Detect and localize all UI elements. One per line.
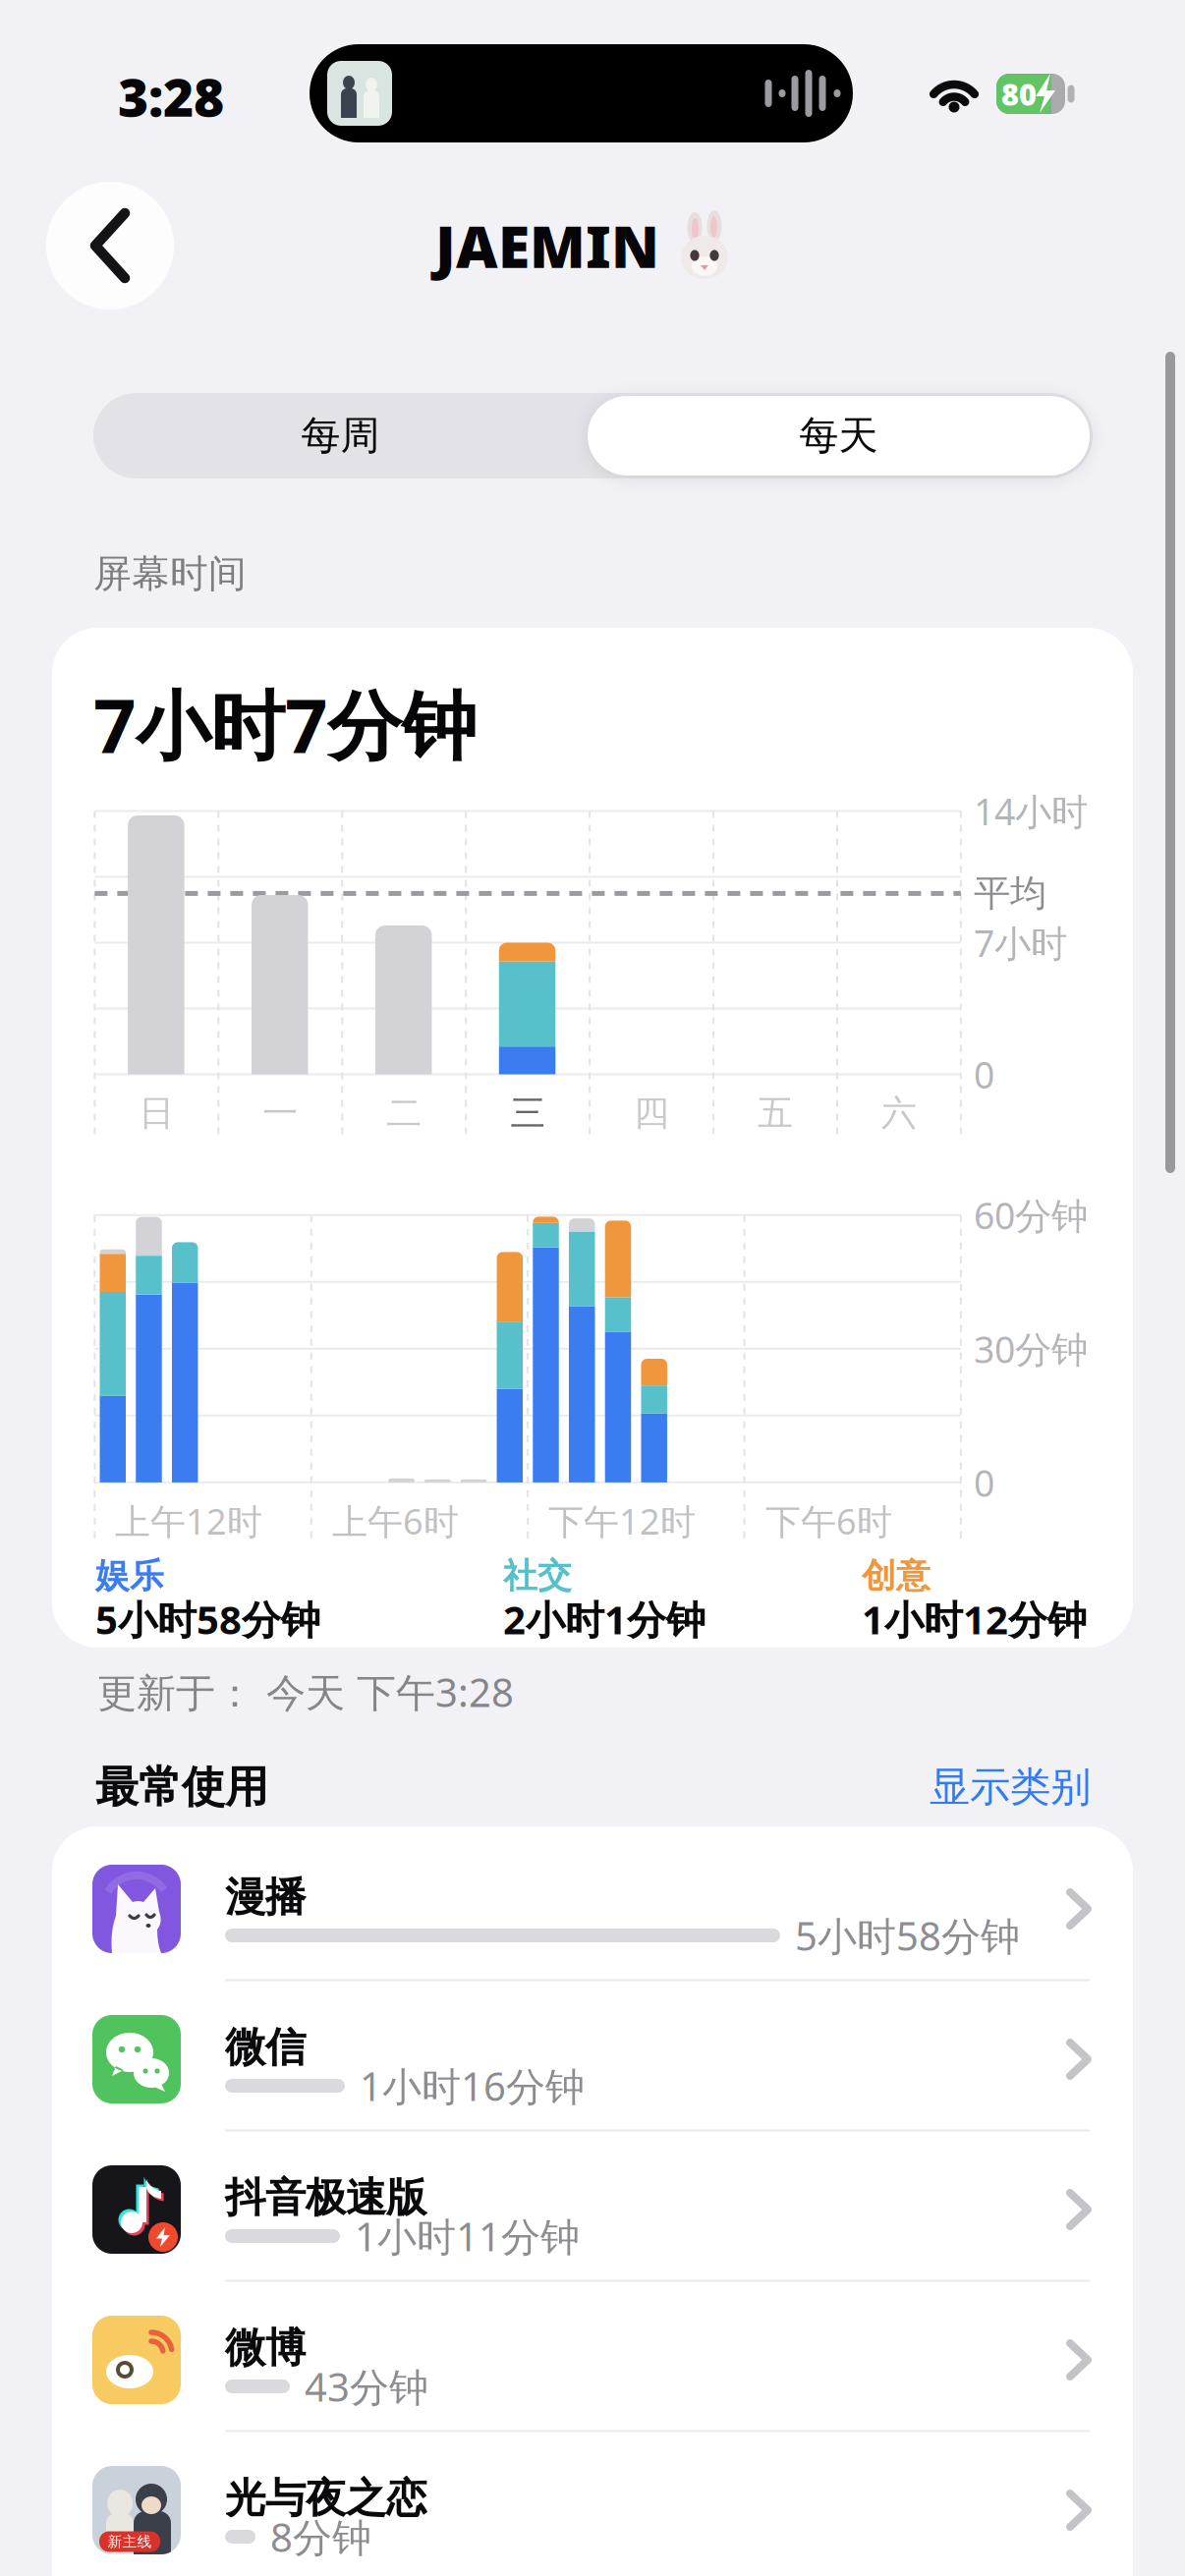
button[interactable]: Back (46, 182, 174, 309)
staticText: 7小时7分钟 (93, 674, 477, 774)
staticText: 5小时58分钟 (795, 1909, 1020, 1961)
staticText: 上午12时 (115, 1497, 262, 1544)
button[interactable]: 显示类别 (796, 1762, 1091, 1812)
staticText: JAEMIN (435, 207, 659, 284)
staticText: 娱乐 (95, 1555, 164, 1597)
staticText: 每天 (799, 412, 878, 460)
staticText: 微信 (225, 2022, 306, 2072)
staticText: 五 (758, 1091, 793, 1135)
staticText: 0 (974, 1050, 994, 1099)
staticText: 四 (634, 1091, 669, 1135)
staticText: 1小时12分钟 (862, 1593, 1087, 1645)
staticText: 二 (386, 1091, 422, 1135)
staticText: 新主线 (108, 2533, 152, 2550)
staticText: 微博 (225, 2323, 306, 2373)
staticText: 30分钟 (974, 1324, 1088, 1373)
staticText: 日 (139, 1091, 174, 1135)
button[interactable]: 每天 (588, 393, 1090, 478)
staticText: 六 (881, 1091, 917, 1135)
staticText: 60分钟 (974, 1191, 1088, 1239)
staticText: 14小时 (974, 787, 1088, 835)
button[interactable]: 漫播 (52, 1844, 1133, 1994)
staticText: 2小时1分钟 (503, 1593, 705, 1645)
button[interactable]: 微信 (52, 1994, 1133, 2145)
staticText: 7小时 (974, 918, 1067, 967)
staticText: 1小时16分钟 (360, 2060, 585, 2112)
staticText: 下午12时 (548, 1497, 696, 1544)
staticText: 三 (510, 1091, 546, 1135)
staticText: 屏幕时间 (93, 550, 247, 597)
staticText: 抖音极速版 (225, 2173, 426, 2223)
staticText: 创意 (862, 1555, 931, 1597)
staticText: 5小时58分钟 (95, 1593, 320, 1645)
button[interactable]: 每周 (93, 393, 588, 478)
button[interactable]: 抖音极速版 (52, 2145, 1133, 2295)
staticText: 43分钟 (305, 2360, 428, 2412)
staticText: 3:28 (118, 62, 224, 131)
staticText: 显示类别 (930, 1762, 1091, 1812)
staticText: 最常使用 (95, 1761, 268, 1814)
staticText: 上午6时 (332, 1497, 459, 1544)
staticText: 更新于： 今天 下午3:28 (97, 1666, 514, 1718)
staticText: 光与夜之恋 (225, 2473, 426, 2523)
staticText: 8分钟 (270, 2511, 371, 2563)
button[interactable]: 新主线 (52, 2445, 1133, 2576)
staticText: 平均 (974, 871, 1046, 916)
staticText: 漫播 (225, 1872, 306, 1922)
staticText: 0 (974, 1458, 994, 1507)
button[interactable]: 微博 (52, 2295, 1133, 2445)
staticText: 每周 (301, 412, 380, 460)
staticText: 一 (263, 1091, 298, 1135)
staticText: 1小时11分钟 (355, 2210, 580, 2262)
staticText: 80 (1001, 74, 1037, 114)
staticText: 下午6时 (765, 1497, 892, 1544)
staticText: 社交 (503, 1555, 572, 1597)
